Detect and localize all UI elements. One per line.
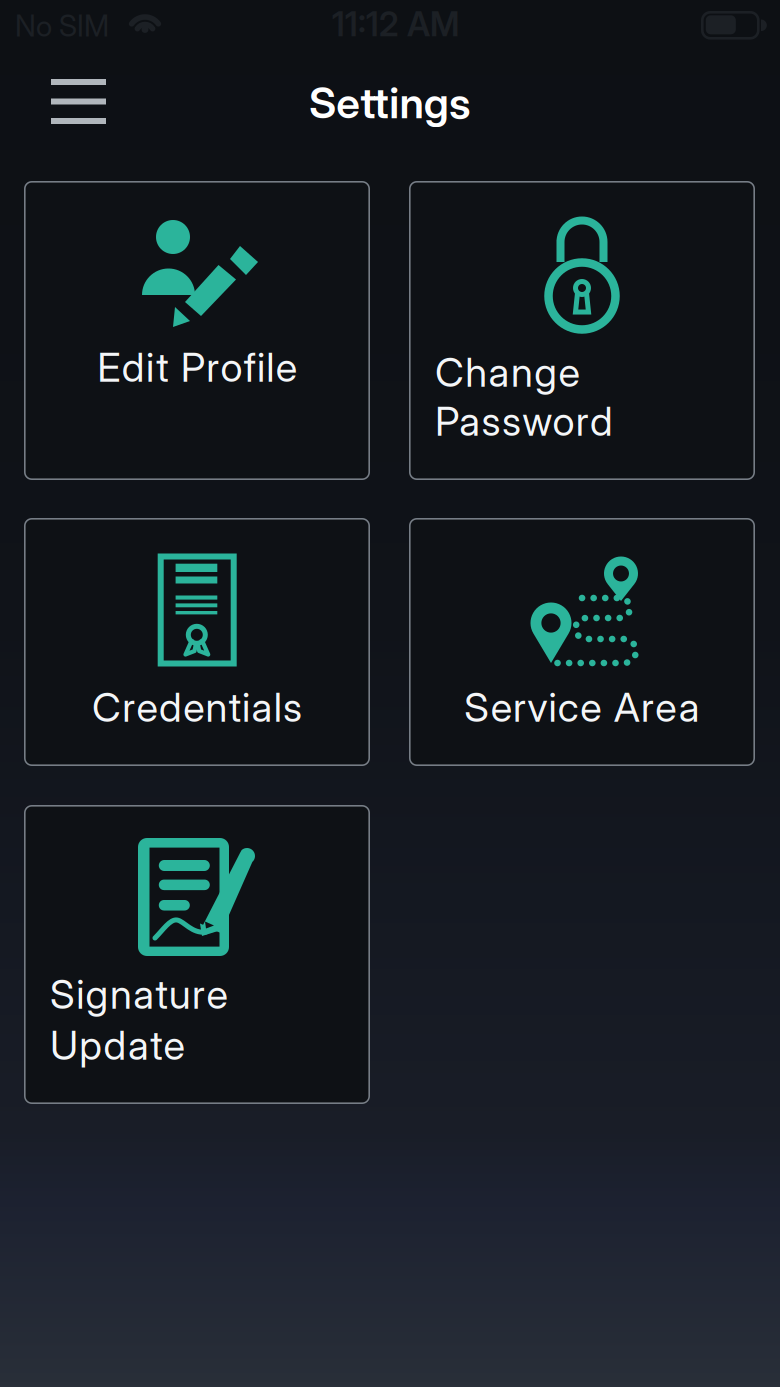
button[interactable]: Change xyxy=(409,181,755,480)
staticText: Edit Profile xyxy=(97,343,297,391)
button[interactable]: Edit Profile xyxy=(24,181,370,480)
button[interactable]: Service Area xyxy=(409,518,755,766)
staticText: 11:12 AM xyxy=(332,4,459,44)
staticText: Update xyxy=(50,1021,184,1069)
button[interactable]: Signature xyxy=(24,805,370,1104)
staticText: Credentials xyxy=(92,683,302,731)
staticText: Settings xyxy=(309,77,471,129)
staticText: Password xyxy=(435,397,613,445)
button[interactable]: Menu xyxy=(35,63,122,140)
staticText: Change xyxy=(435,348,579,396)
staticText: No SIM xyxy=(15,8,109,43)
staticText: Service Area xyxy=(464,683,700,731)
button[interactable]: Credentials xyxy=(24,518,370,766)
staticText: Signature xyxy=(50,970,227,1018)
